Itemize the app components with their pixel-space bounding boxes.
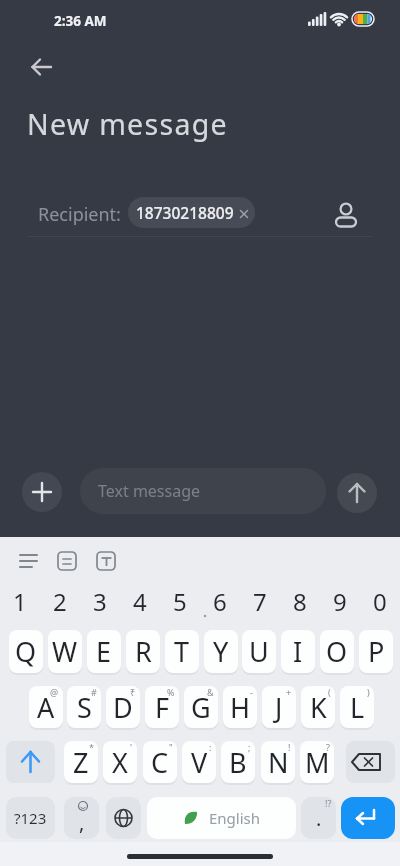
button[interactable]: ₹ [106, 686, 140, 728]
button[interactable] [346, 741, 395, 783]
button[interactable]: Text message [80, 468, 326, 514]
button[interactable]: T [165, 630, 199, 673]
button[interactable]: R [126, 630, 160, 673]
button[interactable]: !? [301, 797, 336, 839]
button[interactable] [6, 741, 55, 783]
button[interactable]: 3 [80, 584, 120, 618]
staticText: Q [15, 633, 37, 670]
button[interactable]: ! [261, 741, 295, 783]
staticText: V [191, 744, 208, 781]
button[interactable]: " [143, 741, 177, 783]
button[interactable]: 1 [0, 584, 40, 618]
button[interactable]: E [87, 630, 121, 673]
button[interactable]: : [182, 741, 216, 783]
staticText: I [293, 633, 303, 670]
button[interactable]: @ [29, 686, 63, 728]
button[interactable]: English [147, 797, 296, 839]
staticText: & [207, 686, 214, 698]
staticText: A [37, 689, 55, 726]
button[interactable]: ( [301, 686, 335, 728]
staticText: - [250, 686, 253, 698]
button[interactable]: 8 [280, 584, 320, 618]
button[interactable]: ' [103, 741, 137, 783]
button[interactable]: W [48, 630, 82, 673]
button[interactable]: 7 [240, 584, 280, 618]
staticText: O [326, 633, 348, 670]
staticText: B [229, 744, 247, 781]
staticText: L [350, 689, 365, 726]
button[interactable]: 5 [160, 584, 200, 618]
button[interactable]: 18730218809 [128, 197, 255, 228]
staticText: # [91, 686, 97, 698]
button[interactable]: U [242, 630, 276, 673]
button[interactable] [22, 472, 62, 512]
staticText: 2:36 AM [54, 12, 107, 30]
staticText: M [305, 744, 330, 781]
staticText: 0 [373, 585, 387, 618]
staticText: Y [213, 633, 229, 670]
button[interactable]: ; [221, 741, 255, 783]
staticText: . [316, 805, 322, 832]
staticText: C [151, 744, 169, 781]
staticText: ' [130, 741, 133, 753]
button[interactable] [106, 797, 141, 839]
button[interactable]: P [359, 630, 393, 673]
staticText: F [155, 689, 170, 726]
staticText: ! [288, 741, 291, 753]
staticText: 18730218809 [136, 202, 234, 223]
button[interactable] [337, 473, 377, 513]
staticText: 2 [53, 585, 67, 618]
staticText: D [113, 689, 133, 726]
button[interactable]: Y [204, 630, 238, 673]
button[interactable]: , [64, 797, 99, 839]
staticText: ₹ [130, 686, 136, 698]
staticText: P [368, 633, 385, 670]
staticText: 7 [253, 585, 267, 618]
staticText: English [209, 808, 261, 828]
staticText: Recipient: [38, 202, 121, 227]
staticText: ; [248, 741, 251, 753]
staticText: R [135, 633, 152, 670]
staticText: W [52, 633, 78, 670]
staticText: H [230, 689, 251, 726]
button[interactable] [14, 546, 44, 576]
button[interactable]: % [145, 686, 179, 728]
button[interactable] [341, 797, 395, 839]
staticText: K [310, 689, 327, 726]
button[interactable]: 0 [360, 584, 400, 618]
button[interactable]: O [320, 630, 354, 673]
staticText: , [79, 809, 85, 836]
button[interactable]: 2 [40, 584, 80, 618]
staticText: % [167, 686, 175, 698]
button[interactable] [91, 546, 121, 576]
staticText: G [191, 689, 211, 726]
button[interactable]: ? [300, 741, 334, 783]
button[interactable] [22, 51, 58, 83]
button[interactable]: # [67, 686, 101, 728]
button[interactable] [52, 546, 82, 576]
staticText: * [89, 741, 94, 753]
button[interactable]: & [184, 686, 218, 728]
button[interactable]: - [223, 686, 257, 728]
button[interactable]: * [64, 741, 98, 783]
staticText: 5 [173, 585, 187, 618]
button[interactable]: ) [340, 686, 374, 728]
staticText: ? [326, 741, 330, 753]
staticText: 8 [293, 585, 307, 618]
button[interactable]: 9 [320, 584, 360, 618]
staticText: J [275, 689, 283, 726]
staticText: ?123 [14, 808, 47, 828]
staticText: : [209, 741, 212, 753]
staticText: N [268, 744, 289, 781]
button[interactable]: + [262, 686, 296, 728]
staticText: 9 [333, 585, 347, 618]
staticText: 1 [13, 585, 27, 618]
staticText: E [96, 633, 112, 670]
button[interactable]: ?123 [6, 797, 55, 839]
button[interactable]: Q [9, 630, 43, 673]
staticText: @ [50, 686, 59, 698]
button[interactable]: I [281, 630, 315, 673]
button[interactable]: 4 [120, 584, 160, 618]
button[interactable] [331, 196, 361, 230]
button[interactable]: 6 [200, 584, 240, 618]
